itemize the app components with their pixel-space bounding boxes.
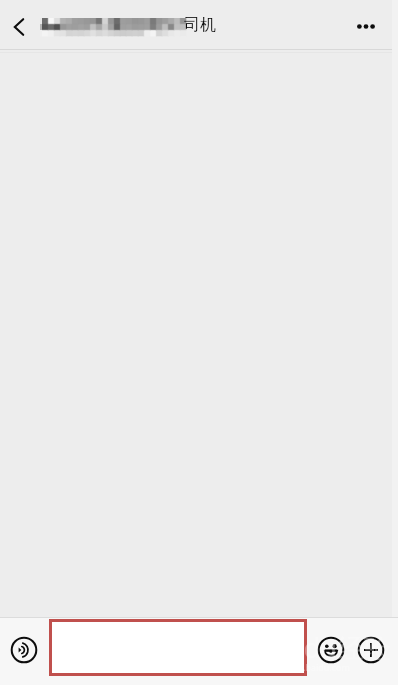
button[interactable]	[49, 619, 307, 676]
button[interactable]: More functions	[355, 634, 387, 666]
button[interactable]: Voice input	[8, 634, 40, 666]
button[interactable]: Back	[0, 5, 41, 49]
button[interactable]: More options	[343, 3, 389, 49]
staticText: jingyan.baidu.com	[272, 661, 350, 673]
button[interactable]: Emoji	[315, 634, 347, 666]
staticText: Baidu经验	[264, 629, 391, 666]
staticText: 司机	[184, 15, 216, 35]
